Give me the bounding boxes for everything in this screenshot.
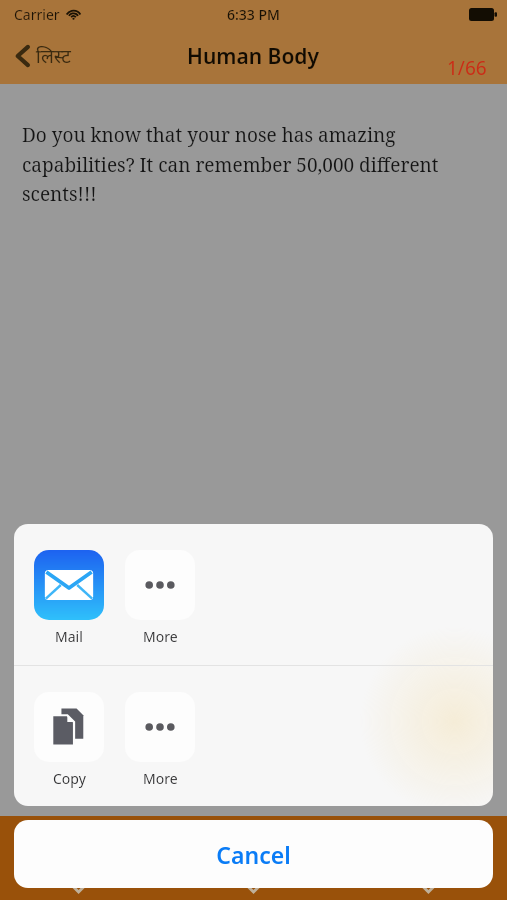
other: More — [125, 550, 195, 620]
staticText: More — [143, 769, 178, 788]
button[interactable]: Cancel — [14, 820, 493, 888]
button[interactable]: लिस्ट — [10, 39, 77, 73]
staticText: More — [143, 627, 178, 646]
staticText: 1/66 — [447, 55, 487, 81]
staticText: Carrier — [14, 5, 60, 24]
button[interactable]: More — [125, 550, 195, 646]
staticText: Cancel — [216, 839, 291, 870]
other: Mail — [34, 550, 104, 620]
button[interactable]: Mail — [34, 550, 104, 646]
staticText: Do you know that your nose has amazing c… — [22, 122, 447, 206]
staticText: Human Body — [187, 42, 320, 71]
other: More — [125, 692, 195, 762]
other: Copy — [34, 692, 104, 762]
staticText: Copy — [53, 769, 86, 788]
button[interactable]: Copy — [34, 692, 104, 788]
staticText: लिस्ट — [36, 43, 71, 69]
staticText: Mail — [55, 627, 83, 646]
button[interactable]: More — [125, 692, 195, 788]
staticText: 6:33 PM — [227, 5, 280, 24]
